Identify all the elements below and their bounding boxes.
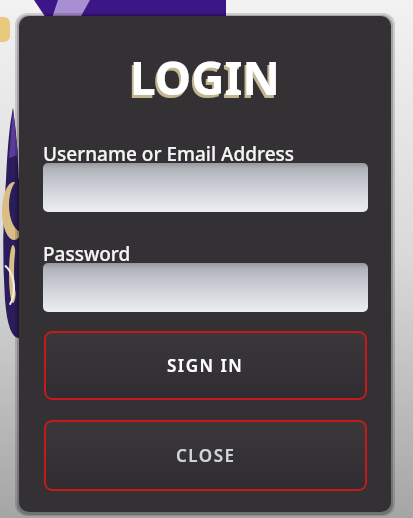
button[interactable] [43,263,368,312]
staticText: LOGIN [128,49,278,112]
staticText: Password [43,241,131,267]
staticText: CLOSE [176,444,236,467]
staticText: Username or Email Address [43,141,295,167]
button[interactable]: SIGN IN [44,331,367,400]
button[interactable]: CLOSE [44,420,367,491]
button[interactable] [43,163,368,212]
staticText: SIGN IN [167,354,244,377]
staticText: LOGIN [130,46,280,109]
